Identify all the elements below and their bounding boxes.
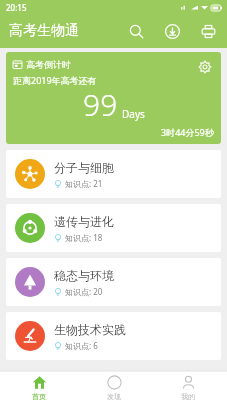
staticText: 稳态与环境 — [54, 268, 114, 283]
button[interactable]: 遗传与进化 — [6, 204, 221, 252]
button[interactable]: Search — [123, 18, 149, 44]
button[interactable]: Print — [195, 18, 221, 44]
staticText: 高考倒计时 — [26, 59, 71, 70]
button[interactable]: 高考倒计时 — [6, 52, 221, 144]
staticText: 分子与细胞 — [54, 160, 114, 175]
staticText: 高考生物通 — [9, 22, 79, 40]
staticText: 知识点: 20 — [65, 286, 103, 297]
button[interactable]: 稳态与环境 — [6, 258, 221, 306]
staticText: 发现 — [107, 392, 121, 401]
staticText: 20:15 — [6, 2, 27, 13]
staticText: 遗传与进化 — [54, 214, 114, 229]
button[interactable]: 我的 — [153, 371, 223, 405]
staticText: 距离2019年高考还有 — [13, 74, 97, 86]
button[interactable]: Settings — [195, 57, 215, 77]
staticText: Days — [122, 107, 145, 121]
button[interactable]: Download — [159, 18, 185, 44]
staticText: 首页 — [32, 392, 46, 401]
staticText: 知识点: 21 — [65, 178, 103, 189]
staticText: 3时44分59秒 — [161, 126, 214, 138]
staticText: 知识点: 18 — [65, 232, 103, 243]
staticText: 生物技术实践 — [54, 322, 126, 337]
button[interactable]: 首页 — [4, 371, 74, 405]
staticText: 知识点: 6 — [65, 340, 98, 351]
staticText: 我的 — [181, 392, 195, 401]
staticText: 99 — [83, 84, 118, 125]
button[interactable]: 生物技术实践 — [6, 312, 221, 360]
button[interactable]: 分子与细胞 — [6, 150, 221, 198]
button[interactable]: 发现 — [79, 371, 149, 405]
